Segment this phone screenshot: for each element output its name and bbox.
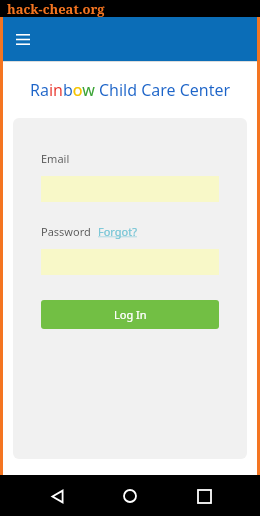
staticText: hack-cheat.org: [7, 0, 105, 17]
button[interactable]: Log In: [41, 300, 219, 329]
staticText: Log In: [114, 307, 147, 322]
button[interactable]: Home: [113, 479, 147, 513]
staticText: Password: [41, 224, 91, 239]
staticText: Forgot?: [98, 224, 137, 239]
button[interactable]: Recent apps: [187, 479, 221, 513]
button[interactable]: Back: [40, 479, 74, 513]
staticText: Email: [41, 151, 70, 166]
button[interactable]: Forgot?: [98, 224, 137, 239]
button[interactable]: Open navigation menu: [10, 26, 36, 52]
staticText: Rainbow Child Care Center: [30, 79, 231, 101]
